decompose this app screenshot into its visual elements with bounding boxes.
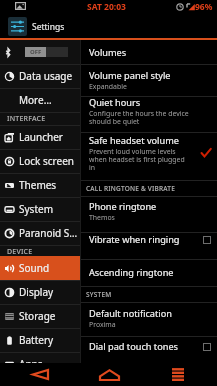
staticText: Ascending ringtone: [89, 266, 174, 279]
button[interactable]: Default notification: [81, 301, 217, 335]
button[interactable]: Storage: [0, 304, 80, 328]
staticText: Storage: [19, 309, 56, 323]
button[interactable]: System: [0, 197, 80, 221]
button[interactable]: Volume panel style: [81, 64, 217, 96]
staticText: Lock screen: [19, 154, 75, 168]
button[interactable]: Lock screen: [0, 149, 80, 173]
staticText: Themos: [89, 213, 115, 222]
staticText: DEVICE: [7, 247, 33, 257]
staticText: Phone ringtone: [89, 200, 157, 213]
staticText: Settings: [32, 21, 65, 33]
staticText: Sound: [19, 261, 50, 275]
staticText: SYSTEM: [86, 290, 112, 299]
button[interactable]: More…: [0, 88, 80, 112]
staticText: Quiet hours: [89, 96, 141, 109]
staticText: Default notification: [89, 307, 172, 320]
button[interactable]: Data usage: [0, 64, 80, 88]
button[interactable]: Vibrate when ringing: [81, 226, 217, 253]
button[interactable]: Ascending ringtone: [81, 259, 217, 286]
staticText: Launcher: [19, 130, 63, 144]
button[interactable]: Apps: [0, 352, 80, 376]
button[interactable]: Back: [0, 363, 73, 386]
staticText: Prevent loud volume levels when headset …: [89, 147, 186, 172]
staticText: Vibrate when ringing: [89, 233, 180, 246]
staticText: Paranoid S…: [19, 226, 78, 240]
staticText: Configure the hours the device should be…: [89, 109, 211, 126]
staticText: CALL RINGTONE & VIBRATE: [86, 184, 175, 193]
staticText: Display: [19, 285, 54, 299]
staticText: INTERFACE: [7, 114, 46, 124]
button[interactable]: Phone ringtone: [81, 193, 217, 228]
staticText: Expandable: [89, 82, 127, 91]
button[interactable]: Display: [0, 280, 80, 304]
staticText: Dial pad touch tones: [89, 340, 178, 353]
staticText: Safe headset volume: [89, 134, 179, 147]
button[interactable]: Paranoid S…: [0, 221, 80, 245]
staticText: 96%: [195, 1, 213, 13]
staticText: Volumes: [89, 46, 127, 59]
button[interactable]: Safe headset volume: [81, 129, 217, 177]
staticText: Apps: [19, 357, 43, 371]
button[interactable]: OFF: [0, 40, 80, 64]
button[interactable]: Launcher: [0, 125, 80, 149]
staticText: Battery: [19, 333, 54, 347]
staticText: Themes: [19, 178, 57, 192]
button[interactable]: Volumes: [81, 40, 217, 64]
button[interactable]: Themes: [0, 173, 80, 197]
staticText: Volume panel style: [89, 69, 171, 82]
button[interactable]: Dial pad touch tones: [81, 333, 217, 360]
staticText: System: [19, 202, 53, 216]
button[interactable]: Recent apps: [145, 363, 217, 386]
button[interactable]: Battery: [0, 328, 80, 352]
staticText: SAT 20:03: [87, 1, 126, 13]
staticText: Proxima: [89, 320, 116, 329]
button[interactable]: Settings: [0, 13, 217, 40]
button[interactable]: Sound: [0, 256, 80, 280]
staticText: Data usage: [19, 69, 73, 83]
button[interactable]: Quiet hours: [81, 93, 217, 129]
staticText: OFF: [30, 48, 42, 56]
staticText: More…: [19, 93, 52, 107]
button[interactable]: Home: [73, 363, 145, 386]
